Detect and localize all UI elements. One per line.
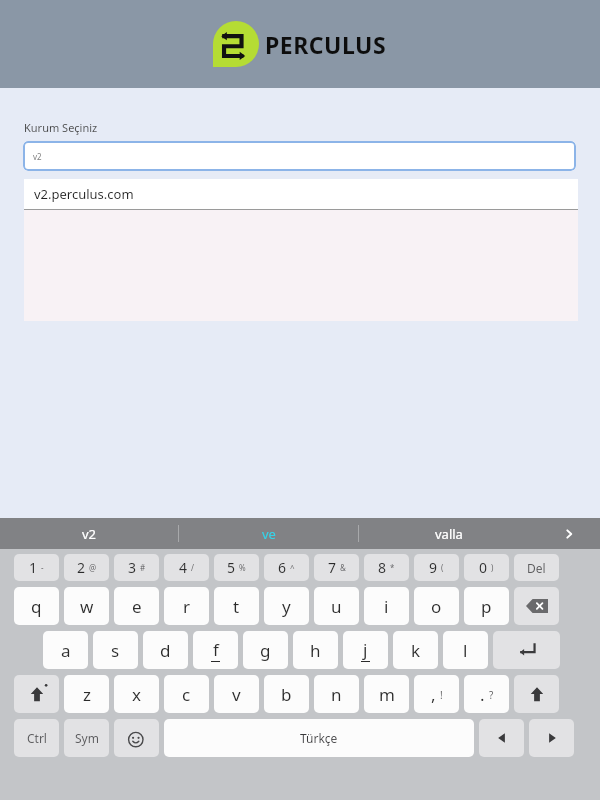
button[interactable]: u: [314, 587, 359, 625]
staticText: ve: [262, 525, 276, 543]
staticText: q: [31, 595, 42, 618]
button[interactable]: 0: [464, 554, 509, 581]
staticText: b: [281, 683, 292, 706]
staticText: 6: [278, 558, 287, 577]
button[interactable]: n: [314, 675, 359, 713]
button[interactable]: b: [264, 675, 309, 713]
button[interactable]: f: [193, 631, 238, 669]
staticText: v2: [82, 525, 97, 543]
staticText: p: [481, 595, 492, 618]
staticText: Türkçe: [300, 730, 338, 746]
button[interactable]: o: [414, 587, 459, 625]
button[interactable]: y: [264, 587, 309, 625]
staticText: 0: [479, 558, 488, 577]
button[interactable]: i: [364, 587, 409, 625]
button[interactable]: 1: [14, 554, 59, 581]
staticText: j: [363, 638, 368, 661]
staticText: ?: [489, 688, 494, 702]
button[interactable]: Backspace: [514, 587, 559, 625]
button[interactable]: c: [164, 675, 209, 713]
button[interactable]: d: [143, 631, 188, 669]
staticText: 8: [378, 558, 387, 577]
button[interactable]: Caps lock: [14, 675, 59, 713]
button[interactable]: 2: [64, 554, 109, 581]
staticText: m: [379, 683, 395, 706]
staticText: 5: [227, 558, 236, 577]
button[interactable]: v: [214, 675, 259, 713]
button[interactable]: p: [464, 587, 509, 625]
button[interactable]: w: [64, 587, 109, 625]
button[interactable]: More suggestions: [538, 518, 600, 549]
staticText: 2: [77, 558, 86, 577]
button[interactable]: 3: [114, 554, 159, 581]
button[interactable]: 7: [314, 554, 359, 581]
staticText: o: [431, 595, 442, 618]
staticText: Sym: [75, 730, 99, 746]
button[interactable]: m: [364, 675, 409, 713]
staticText: i: [384, 595, 389, 618]
staticText: v2.perculus.com: [34, 185, 134, 203]
staticText: x: [132, 683, 141, 706]
button[interactable]: v2: [23, 141, 576, 171]
button[interactable]: Move cursor right: [529, 719, 574, 757]
staticText: .: [480, 683, 485, 706]
button[interactable]: Emoji: [114, 719, 159, 757]
staticText: #: [140, 562, 146, 573]
button[interactable]: e: [114, 587, 159, 625]
staticText: @: [89, 562, 97, 573]
staticText: 9: [429, 558, 438, 577]
button[interactable]: v2.perculus.com: [24, 179, 578, 209]
staticText: -: [41, 562, 44, 573]
staticText: k: [411, 639, 421, 662]
button[interactable]: 9: [414, 554, 459, 581]
button[interactable]: k: [393, 631, 438, 669]
staticText: ): [491, 562, 494, 573]
button[interactable]: Move cursor left: [479, 719, 524, 757]
staticText: /: [191, 562, 194, 573]
button[interactable]: Enter: [493, 631, 560, 669]
button[interactable]: ,: [414, 675, 459, 713]
staticText: 1: [29, 558, 38, 577]
button[interactable]: valla: [359, 518, 538, 549]
button[interactable]: Del: [514, 554, 559, 581]
staticText: d: [160, 639, 171, 662]
staticText: l: [463, 639, 468, 662]
staticText: e: [132, 595, 142, 618]
button[interactable]: 8: [364, 554, 409, 581]
button[interactable]: a: [43, 631, 88, 669]
staticText: Kurum Seçiniz: [24, 120, 98, 135]
staticText: valla: [435, 525, 463, 543]
button[interactable]: j: [343, 631, 388, 669]
button[interactable]: 4: [164, 554, 209, 581]
button[interactable]: t: [214, 587, 259, 625]
button[interactable]: v2: [0, 518, 178, 549]
button[interactable]: q: [14, 587, 59, 625]
staticText: ^: [290, 562, 295, 573]
button[interactable]: z: [64, 675, 109, 713]
staticText: s: [111, 639, 120, 662]
button[interactable]: s: [93, 631, 138, 669]
button[interactable]: h: [293, 631, 338, 669]
staticText: *: [390, 562, 395, 573]
button[interactable]: ve: [179, 518, 358, 549]
button[interactable]: Ctrl: [14, 719, 59, 757]
button[interactable]: x: [114, 675, 159, 713]
staticText: t: [233, 595, 240, 618]
button[interactable]: l: [443, 631, 488, 669]
staticText: g: [260, 639, 271, 662]
button[interactable]: 5: [214, 554, 259, 581]
staticText: 3: [128, 558, 137, 577]
staticText: %: [239, 562, 246, 573]
staticText: &: [340, 562, 346, 573]
staticText: v: [232, 683, 241, 706]
button[interactable]: g: [243, 631, 288, 669]
button[interactable]: Sym: [64, 719, 109, 757]
button[interactable]: r: [164, 587, 209, 625]
staticText: z: [83, 683, 91, 706]
staticText: v2: [33, 151, 42, 162]
staticText: w: [80, 595, 94, 618]
button[interactable]: Türkçe: [164, 719, 474, 757]
button[interactable]: 6: [264, 554, 309, 581]
button[interactable]: .: [464, 675, 509, 713]
button[interactable]: Shift: [514, 675, 559, 713]
